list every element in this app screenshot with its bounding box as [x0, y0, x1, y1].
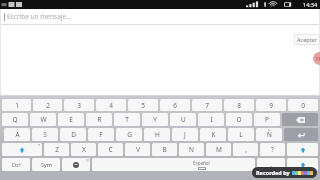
staticText: 5 — [141, 101, 145, 110]
button[interactable]: ? — [260, 143, 285, 156]
button[interactable]: 5 — [128, 99, 158, 111]
staticText: O — [236, 115, 242, 124]
button[interactable]: 7 — [192, 99, 222, 111]
staticText: G — [127, 130, 132, 139]
staticText: 6 — [173, 101, 177, 110]
button[interactable]: V — [125, 143, 150, 156]
staticText: Recorded by — [256, 169, 290, 176]
staticText: P — [265, 115, 269, 124]
button[interactable]: Space — [92, 158, 255, 171]
staticText: X — [82, 145, 86, 154]
button[interactable]: G — [116, 128, 142, 141]
button[interactable]: R — [86, 113, 112, 126]
button[interactable]: Q — [2, 113, 28, 126]
button[interactable]: Shift — [287, 158, 318, 171]
staticText: V — [136, 145, 140, 154]
other: Shift — [300, 147, 306, 153]
staticText: B — [162, 145, 167, 154]
button[interactable]: Z — [44, 143, 69, 156]
button[interactable]: Escribe un mensaje... — [0, 9, 320, 24]
button[interactable]: U — [170, 113, 196, 126]
button[interactable]: 1 — [2, 99, 31, 111]
other: Shift — [19, 147, 25, 153]
button[interactable]: Sym — [32, 158, 60, 171]
other: Shift — [300, 162, 306, 168]
staticText: Sym — [41, 161, 52, 168]
staticText: 7 — [205, 101, 209, 110]
staticText: 0 — [301, 101, 305, 110]
button[interactable]: D — [60, 128, 86, 141]
button[interactable]: 4 — [96, 99, 126, 111]
staticText: Escribe un mensaje... — [7, 12, 72, 21]
staticText: M — [216, 145, 222, 154]
button[interactable]: F — [88, 128, 114, 141]
button[interactable]: 2 — [33, 99, 62, 111]
button[interactable]: Shift — [2, 143, 42, 156]
button[interactable]: K — [200, 128, 226, 141]
staticText: . — [270, 160, 272, 169]
button[interactable]: A — [4, 128, 30, 141]
button[interactable]: B — [152, 143, 177, 156]
staticText: , — [245, 145, 247, 154]
button[interactable]: E — [58, 113, 84, 126]
staticText: D — [71, 130, 76, 139]
staticText: H — [155, 130, 160, 139]
button[interactable]: H — [144, 128, 170, 141]
staticText: Aceptar — [297, 36, 317, 43]
staticText: U — [181, 115, 186, 124]
staticText: L — [239, 130, 243, 139]
staticText: J — [184, 130, 186, 139]
button[interactable]: . — [257, 158, 285, 171]
button[interactable]: N — [179, 143, 204, 156]
staticText: C — [108, 145, 113, 154]
button[interactable]: 6 — [160, 99, 190, 111]
staticText: R — [97, 115, 102, 124]
other: Enter — [297, 132, 305, 138]
button[interactable]: 0 — [288, 99, 318, 111]
staticText: Q — [12, 115, 18, 124]
button[interactable]: Ñ — [256, 128, 282, 141]
button[interactable]: Emoji — [62, 158, 90, 171]
staticText: Español — [193, 160, 210, 166]
staticText: 3 — [77, 101, 81, 110]
button[interactable]: T — [114, 113, 140, 126]
button[interactable]: L — [228, 128, 254, 141]
button[interactable]: C — [98, 143, 123, 156]
button[interactable]: X — [71, 143, 96, 156]
button[interactable]: I — [198, 113, 224, 126]
button[interactable]: Backspace — [282, 113, 318, 126]
staticText: m — [316, 54, 320, 64]
button[interactable]: Contact avatar — [313, 52, 320, 65]
staticText: * — [38, 143, 41, 148]
staticText: ? — [271, 145, 274, 154]
button[interactable]: S — [32, 128, 58, 141]
staticText: 9 — [269, 101, 273, 110]
staticText: Y — [153, 115, 157, 124]
staticText: 2 — [46, 101, 50, 110]
button[interactable]: Ctrl — [2, 158, 30, 171]
staticText: 1 — [15, 101, 19, 110]
button[interactable]: P — [254, 113, 280, 126]
staticText: F — [99, 130, 103, 139]
button[interactable]: 8 — [224, 99, 254, 111]
staticText: !? — [86, 158, 89, 163]
button[interactable]: M — [206, 143, 231, 156]
button[interactable]: Y — [142, 113, 168, 126]
button[interactable]: Aceptar — [297, 34, 317, 45]
button[interactable]: Enter — [284, 128, 318, 141]
staticText: W — [40, 115, 47, 124]
button[interactable]: J — [172, 128, 198, 141]
staticText: A — [15, 130, 20, 139]
staticText: 4 — [109, 101, 113, 110]
button[interactable]: 3 — [64, 99, 94, 111]
other: Emoji — [73, 162, 79, 168]
staticText: T — [125, 115, 129, 124]
button[interactable]: , — [233, 143, 258, 156]
button[interactable]: 9 — [256, 99, 286, 111]
staticText: K — [211, 130, 216, 139]
staticText: S — [43, 130, 47, 139]
button[interactable]: Shift — [287, 143, 318, 156]
button[interactable]: W — [30, 113, 56, 126]
button[interactable]: O — [226, 113, 252, 126]
staticText: 14:34 — [303, 1, 318, 8]
